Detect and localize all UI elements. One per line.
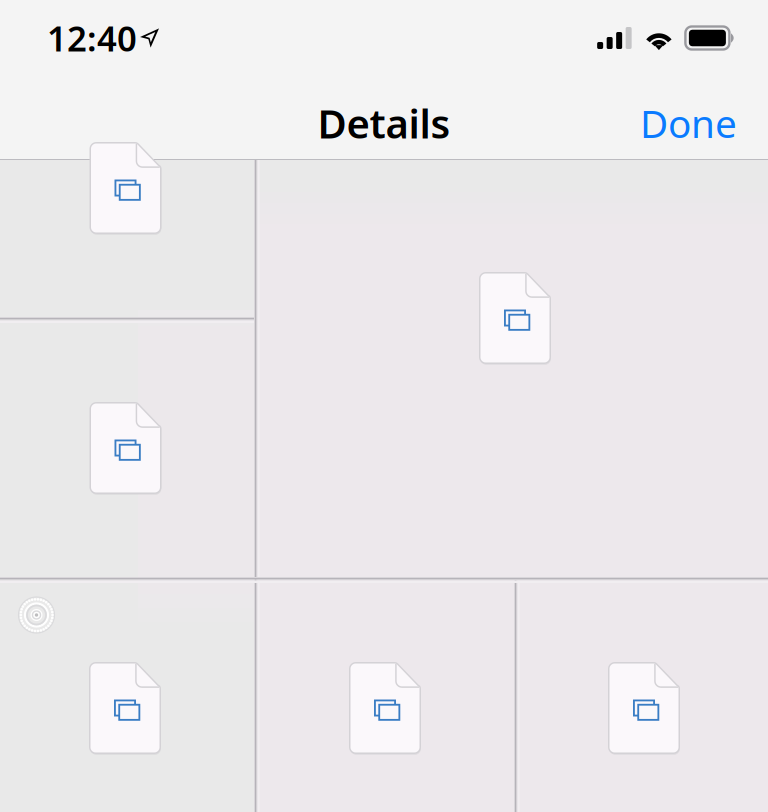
staticText: Done [640,97,737,149]
staticText: 12:40 [47,15,137,61]
button[interactable]: Done [626,86,751,158]
staticText: Details [317,96,450,149]
